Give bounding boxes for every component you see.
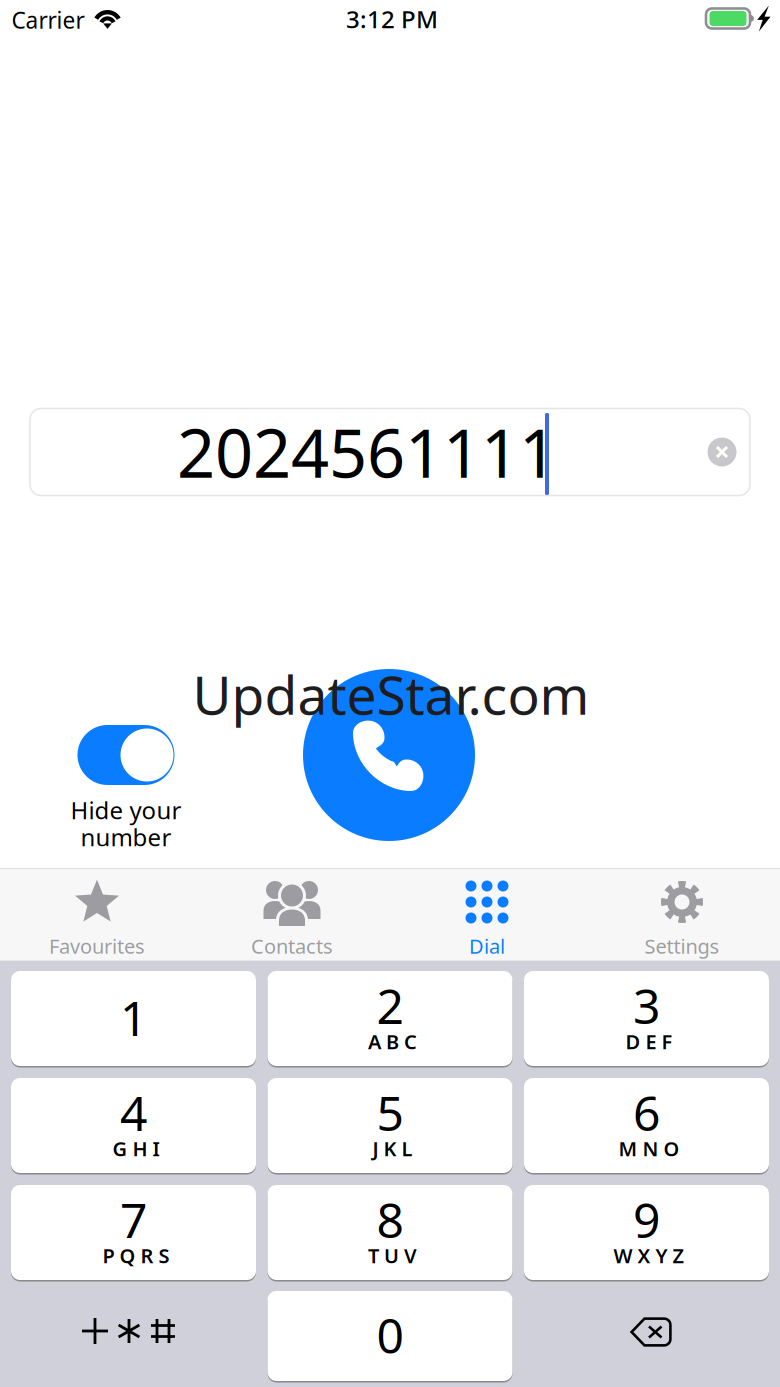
button[interactable]: 5	[267, 1078, 512, 1173]
staticText: ABC	[368, 1028, 417, 1055]
button[interactable]: 1	[11, 971, 256, 1066]
staticText: WXYZ	[613, 1242, 684, 1269]
button[interactable]: Settings	[584, 868, 779, 960]
button[interactable]: 4	[11, 1078, 256, 1173]
staticText: MNO	[618, 1135, 679, 1162]
staticText: 5	[376, 1081, 403, 1144]
staticText: Carrier	[11, 5, 84, 35]
staticText: Favourites	[49, 933, 145, 959]
staticText: 1	[120, 986, 147, 1049]
staticText: 3:12 PM	[346, 3, 438, 35]
staticText: Dial	[469, 933, 505, 959]
staticText: number	[80, 821, 171, 853]
button[interactable]: Call	[303, 669, 475, 841]
button[interactable]: 0	[267, 1291, 512, 1381]
button[interactable]: 3	[524, 971, 769, 1066]
button[interactable]: Clear	[696, 422, 748, 482]
staticText: 0	[376, 1303, 403, 1367]
button[interactable]: 8	[267, 1185, 512, 1280]
button[interactable]: Delete	[524, 1292, 769, 1380]
staticText: 2	[376, 974, 403, 1037]
staticText: 7	[120, 1188, 147, 1251]
staticText: 8	[376, 1188, 403, 1251]
button[interactable]: 9	[524, 1185, 769, 1280]
button[interactable]: Contacts	[194, 868, 389, 960]
button[interactable]: 2	[267, 971, 512, 1066]
button[interactable]: 7	[11, 1185, 256, 1280]
staticText: Contacts	[251, 933, 333, 959]
staticText: GHI	[112, 1135, 159, 1162]
staticText: 4	[120, 1081, 147, 1144]
button[interactable]: Favourites	[0, 868, 194, 960]
staticText: Settings	[644, 933, 719, 959]
staticText: JKL	[372, 1135, 412, 1162]
button[interactable]: Hide your	[21, 716, 231, 866]
staticText: PQRS	[102, 1242, 169, 1269]
button[interactable]: Plus, star and hash	[11, 1292, 256, 1380]
staticText: UpdateStar.com	[192, 659, 589, 729]
staticText: 2024561111	[177, 408, 557, 496]
button[interactable]: 6	[524, 1078, 769, 1173]
staticText: DEF	[625, 1028, 672, 1055]
button[interactable]: Dial	[389, 868, 584, 960]
staticText: 6	[633, 1081, 660, 1144]
staticText: 9	[633, 1188, 660, 1251]
staticText: 3	[633, 974, 660, 1037]
staticText: Hide your	[70, 794, 181, 826]
staticText: TUV	[368, 1242, 417, 1269]
